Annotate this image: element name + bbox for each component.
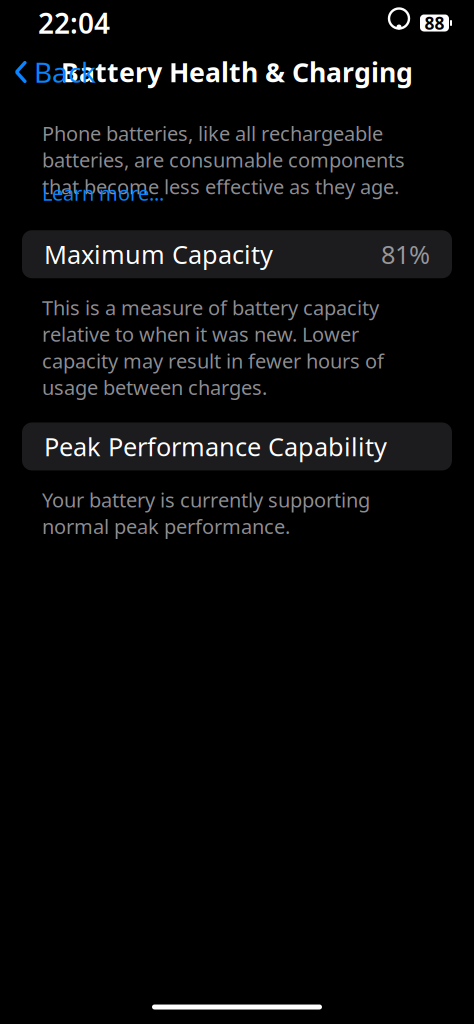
staticText: Learn more... [42,180,164,206]
staticText: Peak Performance Capability [44,430,387,463]
staticText: 88 [424,11,444,34]
staticText: 22:04 [38,4,110,42]
button[interactable]: Peak Performance Capability [22,422,452,470]
staticText: Phone batteries, like all rechargeable b… [42,120,405,200]
staticText: Back [34,53,96,91]
button[interactable]: Learn more... [0,200,164,206]
staticText: 81% [381,237,430,271]
staticText: Your battery is currently supporting nor… [42,486,370,540]
staticText: Battery Health & Charging [61,54,413,90]
button[interactable]: Maximum Capacity [22,230,452,278]
staticText: Maximum Capacity [44,237,273,271]
staticText: This is a measure of battery capacity re… [42,294,384,400]
button[interactable]: Back [0,47,96,97]
